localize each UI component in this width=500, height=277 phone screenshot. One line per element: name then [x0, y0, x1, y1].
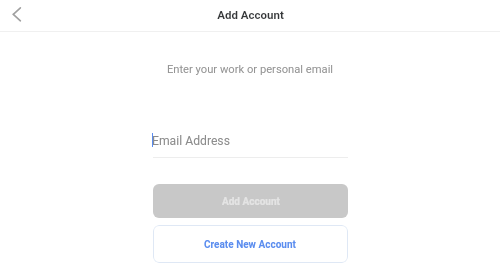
staticText: Create New Account: [204, 239, 296, 251]
button[interactable]: Add Account: [153, 184, 348, 218]
staticText: Email Address: [152, 134, 230, 148]
button[interactable]: Create New Account: [153, 225, 348, 263]
staticText: Add Account: [217, 8, 284, 21]
staticText: Enter your work or personal email: [0, 63, 500, 76]
button[interactable]: Email Address: [153, 132, 348, 158]
staticText: Add Account: [222, 196, 280, 208]
button[interactable]: Back: [0, 0, 34, 31]
